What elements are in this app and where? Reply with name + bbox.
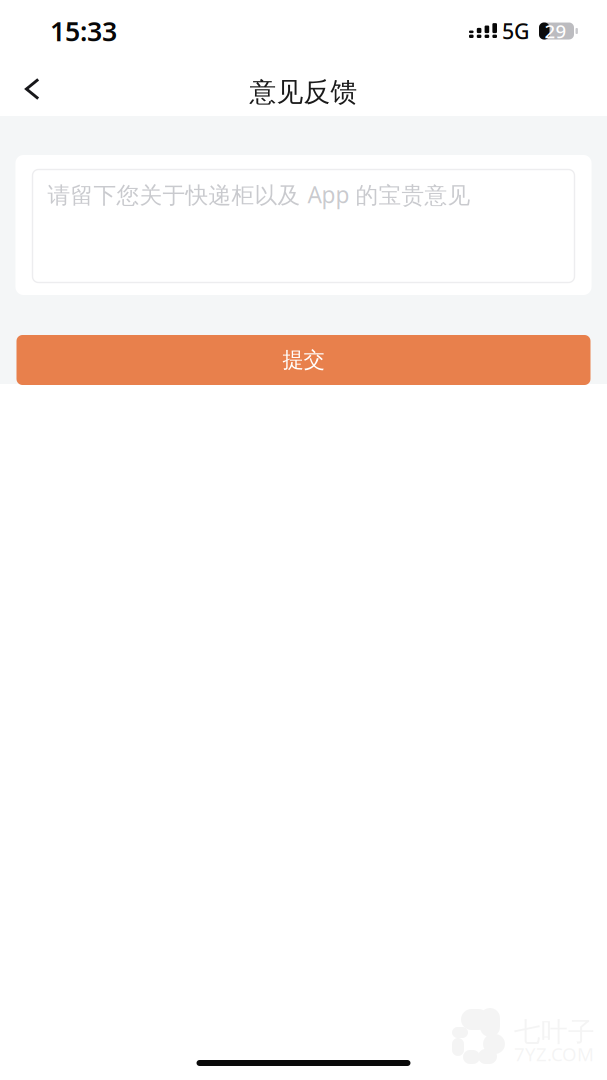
staticText: 七叶子 [514,1016,595,1048]
button[interactable]: Back [0,57,75,116]
button[interactable]: 请留下您关于快递柜以及 App 的宝贵意见 [32,169,574,282]
button[interactable]: 提交 [16,335,590,385]
staticText: 提交 [282,347,324,373]
staticText: 意见反馈 [249,76,357,108]
staticText: 请留下您关于快递柜以及 App 的宝贵意见 [47,179,470,210]
staticText: 7YZ.COM [514,1042,594,1066]
staticText: 29 [544,19,566,43]
staticText: 15:33 [50,13,117,49]
staticText: 5G [502,17,530,45]
